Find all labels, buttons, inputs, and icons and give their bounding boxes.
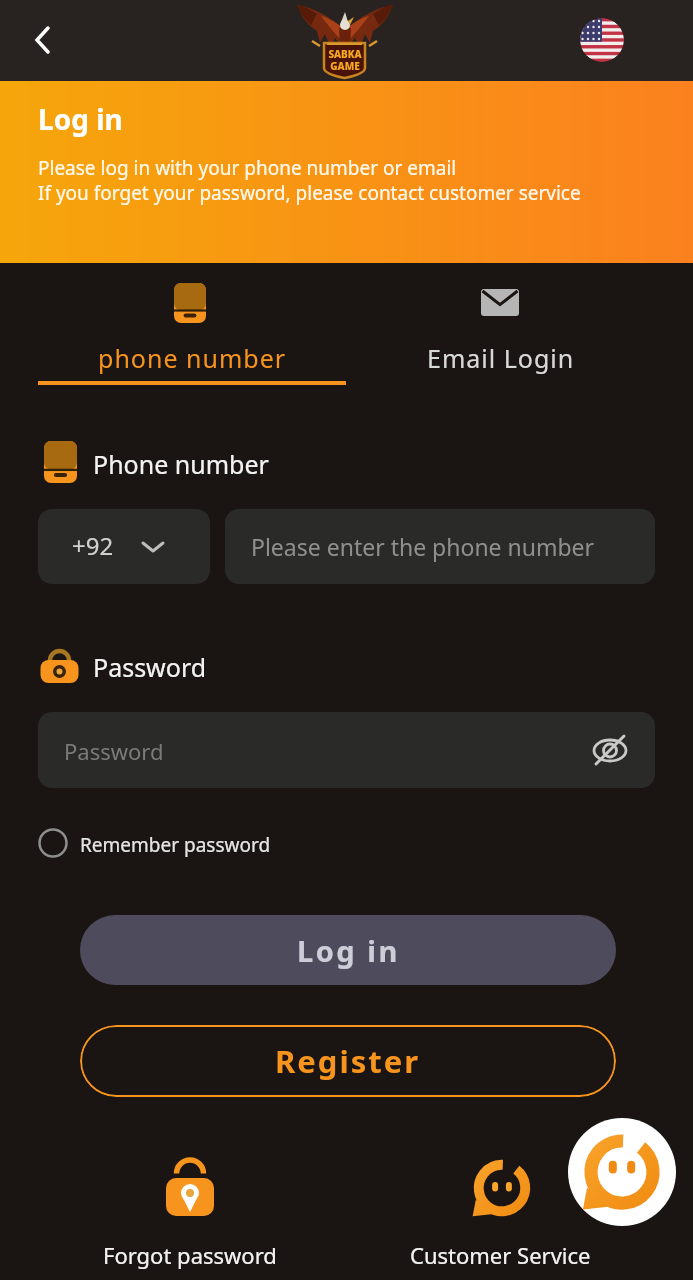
- button[interactable]: Forgot password: [100, 1145, 280, 1270]
- button[interactable]: [20, 14, 64, 66]
- staticText: Please enter the phone number: [251, 531, 595, 562]
- button[interactable]: [580, 18, 624, 62]
- button[interactable]: Remember password: [36, 826, 336, 860]
- button[interactable]: Customer Service: [405, 1145, 595, 1270]
- staticText: Forgot password: [103, 1240, 277, 1270]
- staticText: Password: [93, 650, 207, 684]
- button[interactable]: Please enter the phone number: [225, 509, 655, 584]
- button[interactable]: Log in: [80, 915, 616, 985]
- staticText: Email Login: [427, 341, 575, 375]
- button[interactable]: Password: [38, 712, 655, 788]
- staticText: Remember password: [80, 832, 271, 858]
- button[interactable]: [592, 733, 628, 767]
- staticText: Register: [275, 1040, 421, 1082]
- staticText: Log in: [38, 100, 123, 138]
- staticText: Phone number: [93, 447, 269, 481]
- staticText: phone number: [98, 341, 287, 375]
- staticText: GAME: [315, 59, 375, 71]
- staticText: +92: [72, 529, 114, 562]
- staticText: Customer Service: [410, 1240, 591, 1270]
- staticText: Please log in with your phone number or …: [38, 155, 581, 206]
- staticText: Log in: [297, 931, 400, 970]
- button[interactable]: +92: [38, 509, 210, 584]
- staticText: SABKA: [315, 47, 375, 59]
- button[interactable]: [38, 275, 346, 385]
- staticText: Password: [64, 736, 164, 766]
- button[interactable]: [346, 275, 655, 385]
- button[interactable]: Register: [80, 1025, 616, 1097]
- button[interactable]: [568, 1118, 676, 1226]
